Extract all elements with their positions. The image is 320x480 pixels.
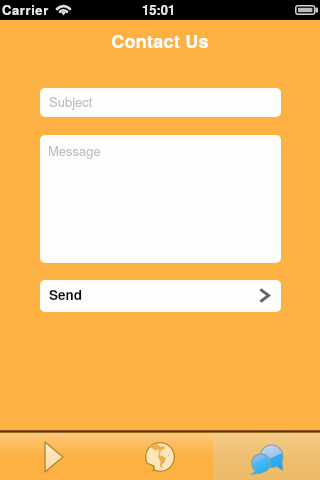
staticText: Contact Us [111,28,209,54]
button[interactable]: Globe [106,433,213,480]
staticText: Send [49,285,83,304]
button[interactable]: Play [0,433,106,480]
button[interactable]: Chat [213,433,320,480]
staticText: Carrier [2,0,49,19]
staticText: Message [48,141,101,160]
staticText: 15:01 [142,0,176,19]
button[interactable]: Message [40,135,281,263]
button[interactable]: Send [40,280,281,312]
staticText: Subject [49,92,93,111]
button[interactable]: Subject [40,88,281,117]
